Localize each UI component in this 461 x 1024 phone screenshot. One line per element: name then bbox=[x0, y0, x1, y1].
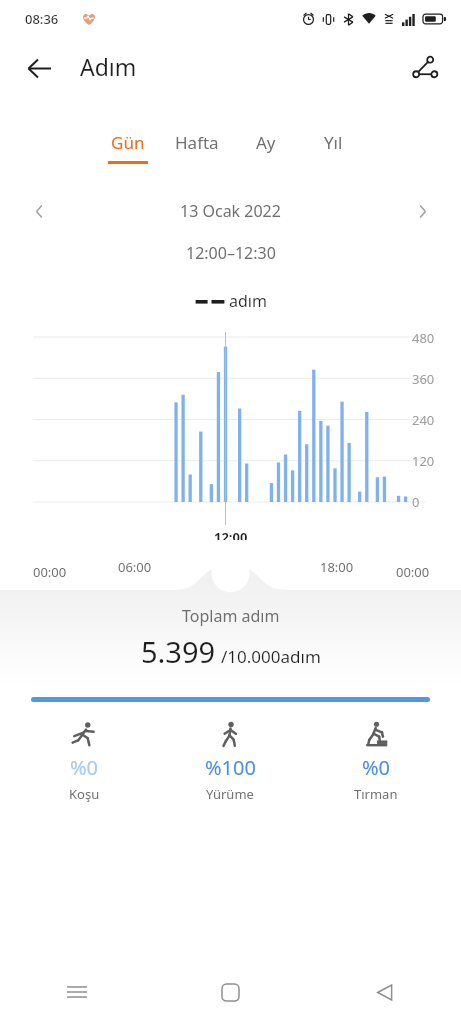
staticText: Tırman bbox=[354, 785, 398, 803]
button[interactable]: Next day bbox=[406, 196, 438, 226]
staticText: Yıl bbox=[324, 131, 343, 154]
staticText: Hafta bbox=[175, 131, 219, 154]
staticText: Ay bbox=[256, 131, 276, 154]
button[interactable]: Yıl bbox=[306, 131, 360, 164]
staticText: Koşu bbox=[69, 785, 100, 803]
staticText: 360 bbox=[412, 370, 435, 388]
staticText: adım bbox=[229, 290, 267, 312]
staticText: 120 bbox=[412, 452, 435, 470]
staticText: 18:00 bbox=[320, 558, 354, 576]
staticText: /10.000adım bbox=[221, 645, 321, 668]
button[interactable]: Recent apps bbox=[0, 960, 153, 1024]
button[interactable]: %0 bbox=[303, 721, 449, 803]
staticText: 480 bbox=[412, 329, 435, 347]
staticText: 08:36 bbox=[25, 10, 59, 28]
staticText: 0 bbox=[412, 493, 420, 511]
staticText: %0 bbox=[70, 754, 99, 781]
button[interactable]: Back bbox=[307, 960, 461, 1024]
button[interactable]: Back bbox=[16, 45, 62, 91]
button[interactable]: Gün bbox=[101, 131, 155, 164]
button[interactable]: Home bbox=[153, 960, 307, 1024]
button[interactable]: Share bbox=[402, 45, 448, 91]
staticText: 13 Ocak 2022 bbox=[180, 200, 281, 222]
staticText: Toplam adım bbox=[182, 605, 280, 627]
button[interactable]: %0 bbox=[12, 721, 157, 803]
staticText: %0 bbox=[362, 754, 391, 781]
button[interactable]: Previous day bbox=[23, 196, 55, 226]
staticText: 12:00–12:30 bbox=[186, 242, 276, 264]
staticText: 06:00 bbox=[118, 558, 152, 576]
staticText: Adım bbox=[80, 51, 137, 82]
button[interactable]: Ay bbox=[239, 131, 293, 164]
staticText: 5.399 bbox=[141, 632, 216, 671]
staticText: 00:00 bbox=[33, 563, 67, 581]
staticText: 240 bbox=[412, 411, 435, 429]
button[interactable]: %100 bbox=[157, 721, 303, 803]
staticText: %100 bbox=[205, 754, 256, 781]
staticText: Yürüme bbox=[206, 785, 254, 803]
button[interactable]: Hafta bbox=[168, 131, 226, 164]
staticText: 00:00 bbox=[396, 563, 430, 581]
staticText: Gün bbox=[111, 131, 145, 154]
staticText: 12:00 bbox=[214, 528, 248, 540]
